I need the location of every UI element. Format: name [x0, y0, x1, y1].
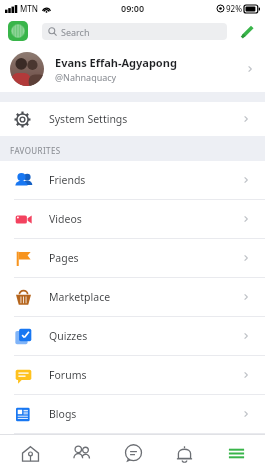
staticText: MTN	[20, 3, 39, 14]
staticText: Friends	[49, 173, 86, 187]
button[interactable]: Quizzes	[0, 317, 265, 355]
button[interactable]: Compose	[237, 21, 257, 41]
staticText: FAVOURITES	[10, 145, 61, 156]
button[interactable]: Messages	[111, 435, 155, 471]
staticText: Evans Effah-Agyapong	[55, 55, 177, 70]
button[interactable]: System Settings	[0, 102, 265, 136]
button[interactable]: Pages	[0, 239, 265, 277]
button[interactable]: Friends	[59, 435, 103, 471]
button[interactable]: Search	[42, 23, 227, 40]
button[interactable]: Menu	[214, 435, 258, 471]
button[interactable]: Marketplace	[0, 278, 265, 316]
button[interactable]: Friends	[0, 161, 265, 199]
button[interactable]: Evans Effah-Agyapong	[0, 46, 265, 92]
button[interactable]: Blogs	[0, 395, 265, 433]
button[interactable]: Forums	[0, 356, 265, 394]
button[interactable]: Notifications	[162, 435, 206, 471]
staticText: 92%	[226, 3, 242, 14]
staticText: Quizzes	[49, 329, 88, 343]
button[interactable]: App logo	[8, 21, 28, 41]
staticText: Blogs	[49, 407, 77, 421]
staticText: @Nahnaquacy	[55, 71, 117, 83]
staticText: Forums	[49, 368, 87, 382]
staticText: 09:00	[121, 2, 145, 14]
staticText: System Settings	[49, 112, 128, 126]
staticText: Marketplace	[49, 290, 111, 304]
staticText: Pages	[49, 251, 79, 265]
staticText: Videos	[49, 212, 82, 226]
staticText: Search	[61, 26, 90, 38]
button[interactable]: Home	[8, 435, 52, 471]
button[interactable]: Videos	[0, 200, 265, 238]
